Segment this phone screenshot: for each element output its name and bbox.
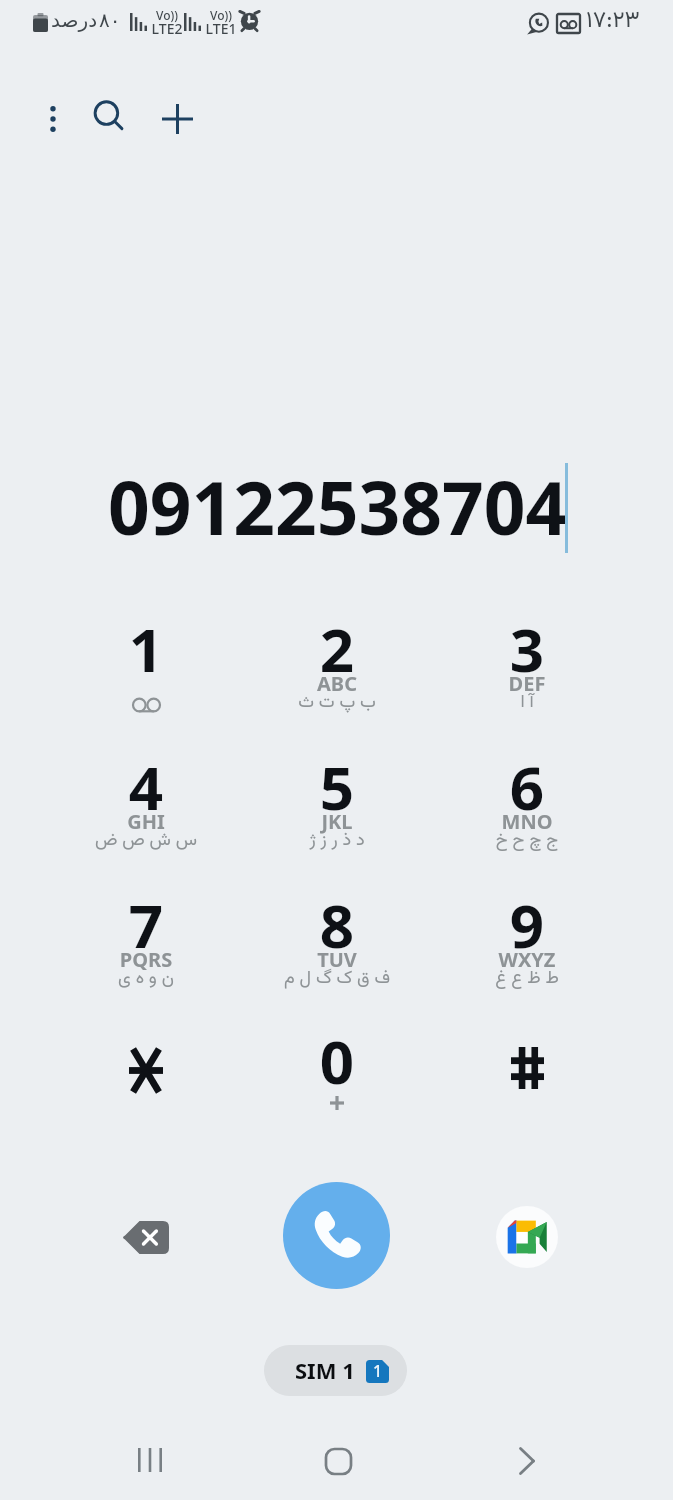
button[interactable]: 6 — [432, 746, 622, 876]
button[interactable]: 4 — [51, 746, 241, 876]
button[interactable]: More options — [30, 96, 76, 142]
staticText: 1 — [373, 1360, 383, 1382]
button[interactable]: Back — [504, 1438, 550, 1484]
button[interactable]: Search — [87, 96, 133, 142]
staticText: 2 — [242, 608, 432, 690]
button[interactable]: Home — [315, 1438, 361, 1484]
staticText: 7 — [51, 884, 241, 966]
button[interactable]: Add contact — [154, 96, 200, 142]
staticText: 3 — [432, 608, 622, 690]
button[interactable]: Video call — [496, 1206, 558, 1268]
staticText: WXYZ — [432, 946, 622, 973]
staticText: 09122538704 — [108, 457, 568, 549]
staticText: JKL — [242, 808, 432, 835]
staticText: 8 — [242, 884, 432, 966]
staticText: TUV — [242, 946, 432, 973]
staticText: س ش ص ض — [51, 827, 241, 855]
button[interactable]: 2 — [242, 608, 432, 738]
staticText: ۱۷:۲۳ — [586, 3, 640, 39]
staticText: Vo)) — [150, 7, 184, 23]
staticText: 6 — [432, 746, 622, 828]
staticText: ن و ه ی — [51, 965, 241, 993]
staticText: 5 — [242, 746, 432, 828]
staticText: 9 — [432, 884, 622, 966]
staticText: DEF — [432, 670, 622, 697]
staticText: LTE1 — [204, 19, 238, 38]
staticText: ب پ ت ث — [242, 689, 432, 717]
button[interactable]: 5 — [242, 746, 432, 876]
staticText: ط ظ ع غ — [432, 965, 622, 993]
button[interactable]: 8 — [242, 884, 432, 1014]
staticText: د ذ ر ز ژ — [242, 827, 432, 855]
button[interactable]: Backspace — [111, 1202, 181, 1272]
button[interactable]: 7 — [51, 884, 241, 1014]
staticText: 1 — [51, 608, 241, 690]
staticText: ۸۰ — [99, 8, 121, 31]
staticText: LTE2 — [150, 19, 184, 38]
staticText: ABC — [242, 670, 432, 697]
staticText: درصد — [51, 8, 98, 31]
staticText: GHI — [51, 808, 241, 835]
staticText: MNO — [432, 808, 622, 835]
staticText: SIM 1 — [295, 1355, 355, 1385]
button[interactable]: 9 — [432, 884, 622, 1014]
button[interactable]: SIM 1 — [264, 1345, 407, 1396]
staticText: PQRS — [51, 946, 241, 973]
button[interactable] — [51, 1020, 241, 1150]
staticText: 0 — [242, 1020, 432, 1102]
staticText: 4 — [51, 746, 241, 828]
button[interactable] — [432, 1020, 622, 1150]
staticText: ج چ ح خ — [432, 827, 622, 855]
staticText: ف ق ک گ ل م — [242, 965, 432, 993]
staticText: Vo)) — [204, 7, 238, 23]
button[interactable]: 3 — [432, 608, 622, 738]
button[interactable]: Recent apps — [127, 1437, 173, 1483]
button[interactable]: 1 — [51, 608, 241, 738]
staticText: آ ا — [432, 689, 622, 717]
button[interactable]: 0 — [242, 1020, 432, 1150]
button[interactable]: Call — [283, 1182, 390, 1289]
